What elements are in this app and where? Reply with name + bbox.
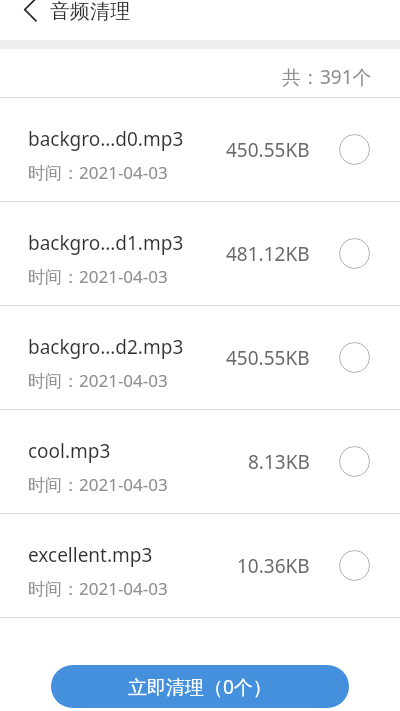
staticText: 共：391个	[282, 64, 372, 90]
button[interactable]: Select backgro…d0.mp3	[308, 98, 400, 201]
button[interactable]: Select backgro…d2.mp3	[308, 306, 400, 409]
staticText: 时间：2021-04-03	[28, 161, 168, 184]
button[interactable]: backgro…d0.mp3	[0, 98, 400, 201]
staticText: 450.55KB	[226, 137, 310, 163]
button[interactable]: backgro…d2.mp3	[0, 306, 400, 409]
staticText: 450.55KB	[226, 345, 310, 371]
staticText: 时间：2021-04-03	[28, 265, 168, 288]
button[interactable]: Select backgro…d1.mp3	[308, 202, 400, 305]
staticText: 10.36KB	[237, 553, 310, 579]
button[interactable]: Select excellent.mp3	[308, 514, 400, 617]
staticText: 时间：2021-04-03	[28, 369, 168, 392]
staticText: 8.13KB	[248, 449, 310, 475]
button[interactable]: Select cool.mp3	[308, 410, 400, 513]
staticText: backgro…d2.mp3	[28, 334, 184, 360]
button[interactable]: 立即清理（0个）	[51, 665, 349, 708]
staticText: backgro…d1.mp3	[28, 230, 184, 256]
staticText: backgro…d0.mp3	[28, 126, 184, 152]
button[interactable]: cool.mp3	[0, 410, 400, 513]
staticText: 时间：2021-04-03	[28, 577, 168, 600]
button[interactable]: Back	[0, 0, 48, 40]
staticText: 音频清理	[50, 0, 130, 24]
button[interactable]: excellent.mp3	[0, 514, 400, 617]
button[interactable]: backgro…d1.mp3	[0, 202, 400, 305]
staticText: excellent.mp3	[28, 542, 153, 568]
staticText: 481.12KB	[226, 241, 310, 267]
staticText: 立即清理（0个）	[128, 674, 272, 700]
staticText: 时间：2021-04-03	[28, 473, 168, 496]
staticText: cool.mp3	[28, 438, 111, 464]
